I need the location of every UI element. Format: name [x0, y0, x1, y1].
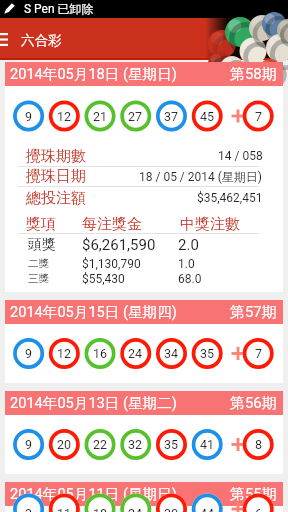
- staticText: 12: [57, 109, 72, 124]
- staticText: 35: [164, 437, 179, 452]
- staticText: 32: [128, 437, 143, 452]
- staticText: 攪珠期數: [26, 147, 86, 166]
- staticText: 14 / 058: [218, 149, 263, 163]
- staticText: 9: [25, 437, 33, 452]
- staticText: 9: [25, 109, 33, 124]
- staticText: $1,130,790: [82, 257, 141, 270]
- staticText: 37: [164, 109, 179, 124]
- button[interactable]: 2014年05月15日 (星期四): [5, 300, 283, 383]
- staticText: 1.0: [178, 257, 195, 270]
- staticText: 總投注額: [26, 189, 86, 208]
- staticText: 35: [200, 346, 215, 361]
- staticText: 44: [200, 506, 215, 512]
- staticText: $55,430: [82, 272, 125, 285]
- staticText: 21: [93, 109, 108, 124]
- staticText: 45: [200, 109, 215, 124]
- staticText: 頭獎: [28, 236, 56, 252]
- staticText: 22: [93, 437, 108, 452]
- staticText: 二獎: [28, 257, 49, 270]
- staticText: 41: [200, 437, 215, 452]
- staticText: 第56期: [230, 394, 277, 413]
- staticText: 12: [57, 346, 72, 361]
- button[interactable]: 2014年05月13日 (星期二): [5, 391, 283, 474]
- staticText: 2014年05月18日 (星期日): [10, 65, 177, 83]
- staticText: $6,261,590: [82, 236, 156, 252]
- staticText: 18 / 05 / 2014 (星期日): [139, 169, 263, 184]
- staticText: 34: [164, 346, 179, 361]
- button[interactable]: Menu: [0, 18, 16, 58]
- staticText: 三獎: [28, 272, 49, 285]
- staticText: 7: [255, 109, 263, 124]
- staticText: $35,462,451: [197, 191, 263, 205]
- staticText: 16: [93, 346, 108, 361]
- staticText: 9: [25, 346, 33, 361]
- staticText: 第55期: [230, 485, 277, 504]
- staticText: 24: [128, 346, 143, 361]
- staticText: 2.0: [178, 236, 199, 252]
- staticText: 68.0: [178, 272, 202, 285]
- button[interactable]: 2014年05月11日 (星期日): [5, 482, 283, 512]
- staticText: 2014年05月11日 (星期日): [10, 485, 177, 503]
- staticText: 11: [57, 506, 72, 512]
- staticText: S Pen 已卸除: [24, 1, 94, 16]
- staticText: 每注獎金: [82, 215, 142, 233]
- staticText: 3: [25, 506, 33, 512]
- staticText: 18: [93, 506, 108, 512]
- staticText: 攪珠日期: [26, 167, 86, 186]
- staticText: 中獎注數: [180, 215, 240, 233]
- staticText: 7: [255, 346, 263, 361]
- staticText: 24: [128, 506, 143, 512]
- staticText: 20: [57, 437, 72, 452]
- staticText: 27: [128, 109, 143, 124]
- button[interactable]: 2014年05月18日 (星期日): [5, 62, 283, 292]
- staticText: 第58期: [230, 65, 277, 84]
- staticText: 2014年05月13日 (星期二): [10, 394, 177, 412]
- staticText: 2014年05月15日 (星期四): [10, 303, 177, 321]
- staticText: 6: [255, 506, 263, 512]
- staticText: 獎項: [26, 215, 56, 233]
- staticText: 8: [255, 437, 263, 452]
- staticText: 六合彩: [21, 32, 62, 49]
- staticText: 第57期: [230, 303, 277, 322]
- staticText: 30: [164, 506, 179, 512]
